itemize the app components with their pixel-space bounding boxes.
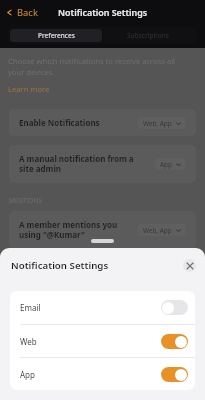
button[interactable]: Back: [0, 2, 44, 23]
button[interactable]: App: [10, 358, 195, 390]
staticText: Web: [20, 336, 161, 347]
staticText: Email: [20, 302, 161, 313]
staticText: A manual notification from a site admin: [19, 153, 150, 175]
staticText: Choose which notifications to receive ac…: [8, 56, 176, 77]
button[interactable]: Subscriptions: [102, 29, 195, 42]
button[interactable]: Web, App: [138, 224, 186, 236]
button[interactable]: A manual notification from a site admin: [9, 145, 196, 183]
button[interactable]: Learn more: [8, 84, 50, 94]
button[interactable]: Web: [10, 325, 195, 357]
staticText: MENTIONS: [9, 196, 42, 204]
staticText: Back: [17, 6, 38, 19]
button[interactable]: App: [155, 158, 186, 170]
staticText: Web, App: [143, 226, 172, 235]
button[interactable]: Email: [10, 291, 195, 324]
button[interactable]: Web, App: [138, 117, 186, 129]
button[interactable]: Close: [183, 259, 196, 272]
staticText: App: [160, 160, 172, 169]
staticText: Subscriptions: [127, 31, 170, 40]
staticText: Notification Settings: [58, 6, 148, 18]
staticText: Notification Settings: [11, 259, 183, 272]
button[interactable]: Preferences: [10, 29, 102, 42]
staticText: Enable Notifications: [19, 117, 133, 128]
button[interactable]: A member mentions you using "@Kumar": [9, 211, 196, 249]
staticText: App: [20, 369, 161, 380]
staticText: Web, App: [143, 119, 172, 128]
staticText: A member mentions you using "@Kumar": [19, 219, 133, 241]
button[interactable]: Enable Notifications: [9, 109, 196, 136]
staticText: Preferences: [38, 31, 75, 40]
